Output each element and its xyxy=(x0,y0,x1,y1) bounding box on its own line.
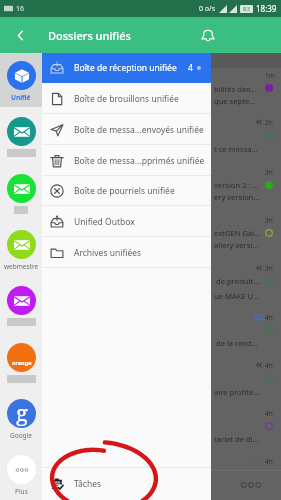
staticText: aire profite… xyxy=(214,387,260,397)
button[interactable]: Account xyxy=(0,335,42,389)
button[interactable]: Boîte de réception unifiée xyxy=(42,53,211,83)
button[interactable]: Account xyxy=(0,166,42,220)
staticText: Unified Outbox xyxy=(74,216,135,228)
button[interactable]: Unifié xyxy=(0,53,42,107)
staticText: bilités dan… xyxy=(214,84,257,94)
staticText: Boîte de messa...envoyés unifiée xyxy=(74,124,204,136)
staticText: Boîte de réception unifiée xyxy=(74,62,177,74)
staticText: Unifié xyxy=(11,93,31,102)
staticText: Plus xyxy=(15,487,28,496)
staticText: 3h xyxy=(265,168,273,177)
button[interactable]: Account xyxy=(0,109,42,163)
button[interactable]: Notifications xyxy=(192,19,224,51)
staticText: de produit… xyxy=(214,276,260,286)
staticText: Google xyxy=(10,431,32,440)
staticText: 4h xyxy=(265,409,273,418)
button[interactable]: Boîte de messa...pprimés unifiée xyxy=(42,145,211,176)
staticText: 4 xyxy=(188,62,193,74)
staticText: 83 xyxy=(243,5,250,13)
staticText: 1m xyxy=(265,71,275,80)
staticText: allery versi… xyxy=(214,240,259,250)
button[interactable]: Tâches xyxy=(42,468,211,500)
button[interactable]: Google xyxy=(0,391,42,445)
button[interactable]: Back xyxy=(4,19,36,51)
staticText: 18:39 xyxy=(256,3,277,14)
staticText: ue MAKE U… xyxy=(214,291,259,301)
staticText: version 2 : … xyxy=(214,180,259,190)
staticText: Boîte de pourriels unifiée xyxy=(74,185,175,197)
staticText: 0 o/s xyxy=(199,4,216,14)
staticText: orange xyxy=(12,359,32,366)
button[interactable]: webmestre xyxy=(0,222,42,276)
staticText: Boîte de brouillons unifiée xyxy=(74,93,179,105)
staticText: 2h xyxy=(265,118,273,127)
button[interactable]: Unified Outbox xyxy=(42,206,211,237)
staticText: Boîte de messa...pprimés unifiée xyxy=(74,155,205,167)
staticText: Tâches xyxy=(74,478,102,490)
staticText: g xyxy=(16,399,28,426)
staticText: extGEN Gal… xyxy=(214,228,261,238)
staticText: 4h xyxy=(265,457,273,466)
staticText: t ce messa… xyxy=(214,144,258,154)
staticText: 4h xyxy=(265,361,273,370)
staticText: 3h xyxy=(265,216,273,225)
staticText: Dossiers unifiés xyxy=(48,28,131,43)
button[interactable]: Boîte de messa...envoyés unifiée xyxy=(42,114,211,145)
staticText: 4h xyxy=(265,313,273,322)
button[interactable]: Boîte de brouillons unifiée xyxy=(42,83,211,114)
staticText: que septe… xyxy=(214,96,256,106)
staticText: 3h xyxy=(265,264,273,273)
staticText: Archives unifiées xyxy=(74,247,142,259)
staticText: 16 xyxy=(16,4,25,14)
button[interactable]: Account xyxy=(0,278,42,332)
staticText: ery version… xyxy=(214,192,260,202)
button[interactable]: Plus xyxy=(0,447,42,500)
staticText: tariat de di… xyxy=(214,434,259,444)
staticText: webmestre xyxy=(4,262,39,271)
button[interactable]: Archives unifiées xyxy=(42,237,211,268)
staticText: de la rand… xyxy=(214,338,258,348)
button[interactable]: Boîte de pourriels unifiée xyxy=(42,175,211,206)
